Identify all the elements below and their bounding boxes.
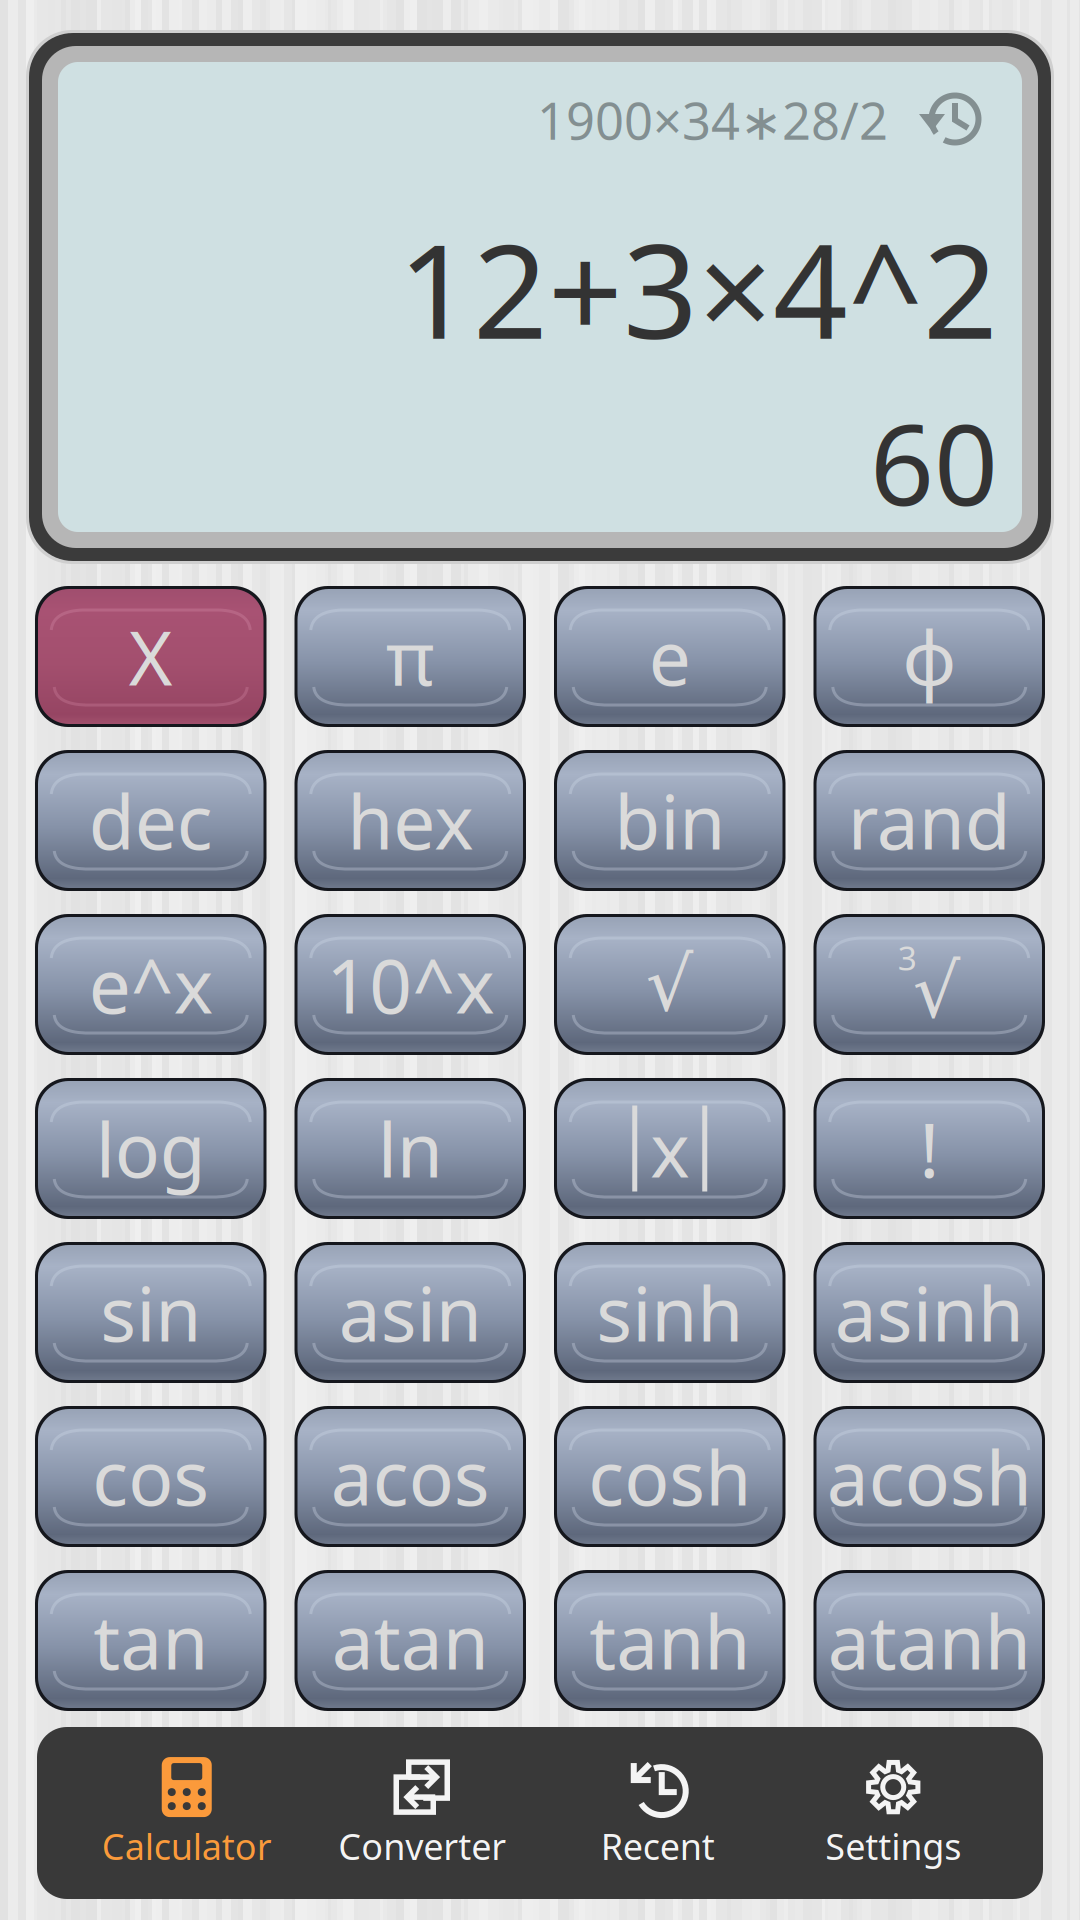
staticText: 10^x: [326, 935, 494, 1034]
staticText: log: [96, 1099, 206, 1198]
button[interactable]: 10^x: [294, 914, 526, 1055]
staticText: π: [386, 607, 435, 706]
button[interactable]: asin: [294, 1242, 526, 1383]
staticText: sinh: [596, 1263, 743, 1362]
staticText: acos: [331, 1427, 490, 1526]
staticText: 12+3×4^2: [398, 201, 998, 375]
staticText: asin: [339, 1263, 482, 1362]
staticText: bin: [614, 771, 725, 870]
button[interactable]: cosh: [554, 1406, 785, 1547]
staticText: tanh: [589, 1591, 750, 1690]
staticText: X: [129, 607, 173, 706]
button[interactable]: Converter: [304, 1745, 540, 1881]
button[interactable]: dec: [35, 750, 266, 891]
staticText: ln: [378, 1099, 443, 1198]
staticText: cosh: [588, 1427, 751, 1526]
button[interactable]: !: [813, 1078, 1045, 1219]
staticText: Calculator: [102, 1822, 272, 1870]
staticText: 3: [898, 935, 917, 980]
staticText: e: [649, 607, 691, 706]
button[interactable]: atan: [294, 1570, 526, 1711]
staticText: √: [646, 942, 694, 1027]
button[interactable]: acosh: [813, 1406, 1045, 1547]
staticText: sin: [100, 1263, 201, 1362]
staticText: √: [913, 949, 961, 1033]
button[interactable]: Recent: [540, 1745, 775, 1881]
staticText: dec: [89, 771, 213, 870]
staticText: φ: [902, 607, 956, 706]
staticText: !: [919, 1099, 939, 1198]
staticText: cos: [92, 1427, 209, 1526]
button[interactable]: tanh: [554, 1570, 785, 1711]
button[interactable]: acos: [294, 1406, 526, 1547]
staticText: Recent: [601, 1822, 715, 1870]
button[interactable]: e^x: [35, 914, 266, 1055]
button[interactable]: e: [554, 586, 785, 727]
button[interactable]: 3: [813, 914, 1045, 1055]
button[interactable]: atanh: [813, 1570, 1045, 1711]
button[interactable]: φ: [813, 586, 1045, 727]
staticText: hex: [347, 771, 473, 870]
button[interactable]: √: [554, 914, 785, 1055]
button[interactable]: tan: [35, 1570, 266, 1711]
button[interactable]: log: [35, 1078, 266, 1219]
button[interactable]: ln: [294, 1078, 526, 1219]
button[interactable]: rand: [813, 750, 1045, 891]
button[interactable]: sinh: [554, 1242, 785, 1383]
button[interactable]: x: [554, 1078, 785, 1219]
staticText: e^x: [89, 935, 213, 1034]
button[interactable]: π: [294, 586, 526, 727]
staticText: x: [650, 1099, 689, 1198]
staticText: tan: [93, 1591, 208, 1690]
button[interactable]: Settings: [775, 1745, 1011, 1881]
staticText: Settings: [825, 1822, 961, 1870]
button[interactable]: sin: [35, 1242, 266, 1383]
staticText: 1900×34∗28/2: [537, 86, 888, 154]
staticText: atanh: [828, 1591, 1031, 1690]
button[interactable]: hex: [294, 750, 526, 891]
button[interactable]: cos: [35, 1406, 266, 1547]
staticText: Converter: [338, 1822, 506, 1870]
staticText: atan: [332, 1591, 489, 1690]
button[interactable]: Calculator: [69, 1745, 304, 1881]
staticText: 60: [870, 388, 998, 536]
staticText: rand: [848, 771, 1011, 870]
button[interactable]: bin: [554, 750, 785, 891]
button[interactable]: asinh: [813, 1242, 1045, 1383]
staticText: acosh: [827, 1427, 1032, 1526]
button[interactable]: X: [35, 586, 266, 727]
staticText: asinh: [835, 1263, 1024, 1362]
